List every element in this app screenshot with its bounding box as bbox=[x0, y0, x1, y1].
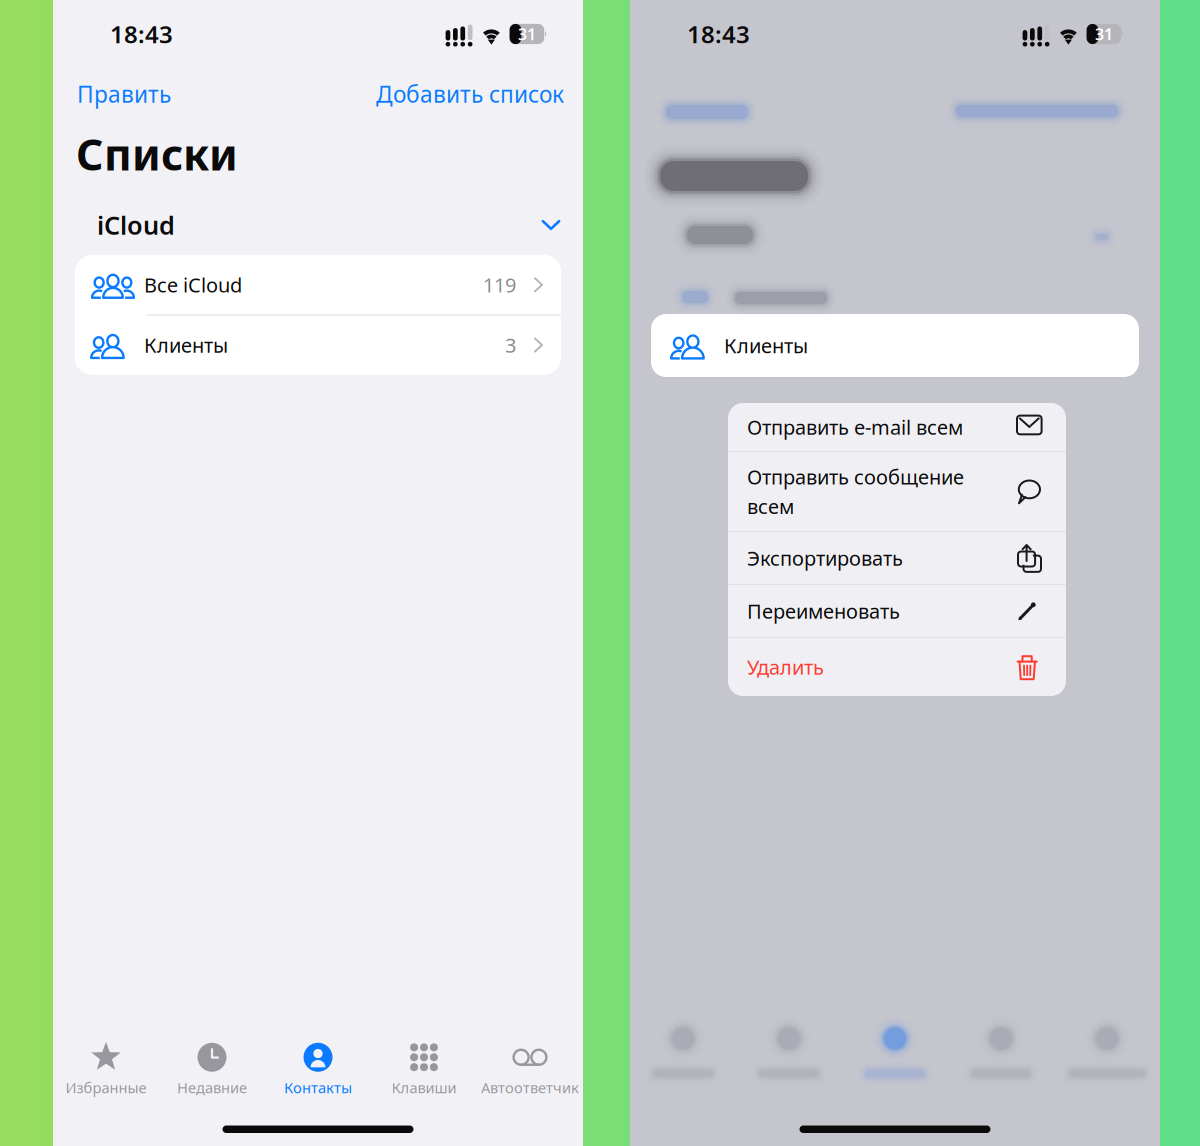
staticText: Контакты bbox=[284, 1078, 352, 1097]
staticText: Все iCloud bbox=[144, 271, 242, 298]
staticText: Удалить bbox=[747, 654, 824, 680]
staticText: Списки bbox=[76, 126, 238, 182]
button[interactable]: Править bbox=[77, 79, 171, 109]
button[interactable]: Добавить список bbox=[376, 79, 564, 109]
staticText: Клиенты bbox=[144, 332, 228, 358]
button[interactable]: Клиенты bbox=[75, 315, 561, 374]
staticText: Отправить сообщение bbox=[747, 463, 964, 490]
staticText: 3 bbox=[505, 332, 516, 358]
staticText: Клавиши bbox=[391, 1078, 456, 1097]
button[interactable]: Удалить bbox=[728, 638, 1066, 696]
staticText: всем bbox=[747, 493, 794, 520]
button[interactable]: Отправить сообщение bbox=[728, 452, 1066, 531]
staticText: Править bbox=[77, 79, 171, 109]
staticText: 119 bbox=[483, 271, 516, 298]
button[interactable]: Отправить e-mail всем bbox=[728, 403, 1066, 451]
staticText: 18:43 bbox=[687, 18, 750, 50]
button[interactable]: Collapse iCloud bbox=[536, 211, 566, 239]
button[interactable]: Избранные bbox=[53, 1040, 159, 1098]
staticText: Избранные bbox=[65, 1078, 146, 1097]
staticText: Автоответчик bbox=[481, 1078, 579, 1097]
button[interactable]: Переименовать bbox=[728, 585, 1066, 637]
button[interactable]: Клиенты bbox=[651, 314, 1139, 377]
staticText: 31 bbox=[1095, 23, 1113, 45]
button[interactable]: Клавиши bbox=[371, 1040, 477, 1098]
staticText: Экспортировать bbox=[747, 545, 903, 571]
staticText: Отправить e-mail всем bbox=[747, 414, 963, 440]
staticText: Недавние bbox=[177, 1078, 247, 1097]
staticText: Переименовать bbox=[747, 598, 900, 624]
staticText: 18:43 bbox=[110, 18, 173, 50]
button[interactable]: Контакты bbox=[265, 1040, 371, 1098]
button[interactable]: Экспортировать bbox=[728, 532, 1066, 584]
staticText: 31 bbox=[518, 23, 536, 45]
button[interactable]: Недавние bbox=[159, 1040, 265, 1098]
staticText: iCloud bbox=[97, 208, 175, 242]
button[interactable]: Автоответчик bbox=[477, 1040, 583, 1098]
staticText: Клиенты bbox=[724, 332, 808, 359]
button[interactable]: Все iCloud bbox=[75, 255, 561, 314]
staticText: Добавить список bbox=[376, 79, 564, 109]
